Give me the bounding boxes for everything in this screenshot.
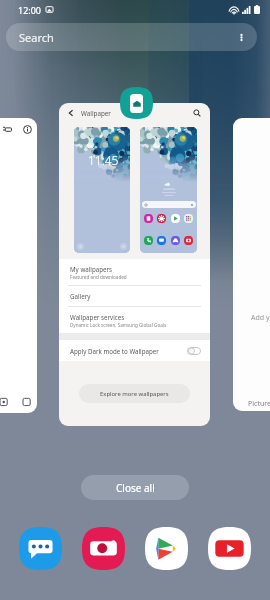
staticText: Add your bbox=[251, 313, 270, 323]
staticText: 12:00 bbox=[18, 4, 42, 16]
staticText: Wallpaper bbox=[81, 109, 111, 118]
staticText: Apply Dark mode to Wallpaper bbox=[70, 347, 159, 355]
staticText: 11:45 bbox=[88, 152, 119, 168]
button[interactable]: Next app bbox=[233, 118, 270, 411]
button[interactable]: Explore more wallpapers bbox=[79, 384, 190, 403]
button[interactable]: Wallpaper app icon bbox=[120, 87, 153, 119]
staticText: Dynamic Lock screen, Samsung Global Goal… bbox=[70, 322, 167, 328]
button[interactable]: My wallpapers bbox=[59, 259, 210, 285]
staticText: Search bbox=[19, 30, 54, 45]
button[interactable]: Search bbox=[6, 23, 257, 51]
button[interactable]: Apply Dark mode to Wallpaper bbox=[59, 340, 210, 361]
staticText: Featured and downloaded bbox=[70, 274, 127, 280]
staticText: My wallpapers bbox=[70, 265, 112, 273]
button[interactable]: Play Store bbox=[144, 526, 189, 571]
button[interactable] bbox=[140, 127, 197, 253]
button[interactable]: Wallpaper services bbox=[59, 307, 210, 333]
button[interactable]: 11:45 bbox=[74, 127, 130, 253]
button[interactable]: Gallery bbox=[59, 286, 210, 306]
staticText: Gallery bbox=[70, 292, 91, 300]
button[interactable]: Wallpaper bbox=[59, 103, 210, 426]
button[interactable]: Messages bbox=[18, 526, 63, 571]
button[interactable]: Close all bbox=[81, 475, 189, 500]
staticText: Wallpaper services bbox=[70, 313, 125, 321]
button[interactable]: Camera bbox=[81, 526, 126, 571]
staticText: Explore more wallpapers bbox=[100, 390, 169, 398]
staticText: Pictures bbox=[248, 399, 270, 409]
staticText: Close all bbox=[116, 481, 155, 495]
button[interactable]: YouTube bbox=[207, 526, 252, 571]
button[interactable]: Previous app bbox=[0, 118, 37, 413]
